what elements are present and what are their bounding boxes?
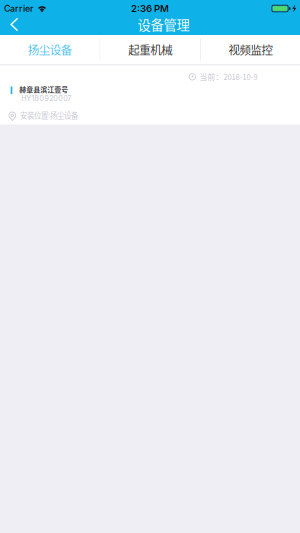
staticText: HY180920007 — [21, 94, 71, 103]
staticText: 视频监控 — [228, 41, 272, 58]
button[interactable]: 视频监控 — [201, 35, 300, 64]
staticText: 当前：2018-10-9 — [199, 71, 257, 82]
staticText: 起重机械 — [128, 41, 172, 58]
button[interactable]: 起重机械 — [100, 35, 200, 64]
staticText: 安装位置:扬尘设备 — [20, 110, 78, 121]
button[interactable]: Back — [0, 17, 28, 35]
staticText: Carrier — [4, 3, 33, 14]
staticText: 设备管理 — [137, 15, 189, 34]
staticText: 扬尘设备 — [28, 41, 72, 58]
button[interactable]: 扬尘设备 — [0, 35, 99, 64]
button[interactable]: 当前：2018-10-9 — [0, 65, 300, 124]
staticText: 赫章县滨江壹号 — [19, 84, 68, 94]
staticText: 2:36 PM — [131, 3, 169, 14]
